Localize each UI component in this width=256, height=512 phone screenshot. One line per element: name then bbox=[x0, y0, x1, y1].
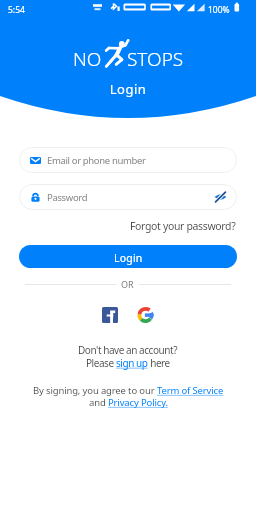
button[interactable]: Privacy Policy. bbox=[108, 396, 168, 409]
staticText: Don't have an account? bbox=[78, 343, 178, 357]
staticText: OR bbox=[121, 278, 134, 290]
button[interactable]: Sign in with Google bbox=[137, 307, 154, 323]
button[interactable]: Sign in with Facebook bbox=[102, 307, 118, 323]
other: Show password bbox=[214, 192, 227, 202]
button[interactable]: Term of Service bbox=[157, 384, 224, 397]
staticText: Privacy Policy. bbox=[108, 396, 168, 409]
staticText: Login bbox=[114, 251, 143, 265]
button[interactable]: Forgot your password? bbox=[130, 219, 236, 233]
button[interactable]: Email or phone number bbox=[19, 147, 237, 173]
staticText: sign up bbox=[116, 356, 148, 370]
staticText: and bbox=[89, 396, 108, 409]
button[interactable]: Login bbox=[19, 245, 237, 268]
staticText: Forgot your password? bbox=[130, 219, 236, 233]
staticText: By signing, you agree to our bbox=[33, 384, 157, 397]
staticText: Email or phone number bbox=[47, 154, 146, 167]
staticText: Term of Service bbox=[157, 384, 224, 397]
staticText: STOPS bbox=[127, 46, 184, 72]
staticText: Login bbox=[0, 80, 256, 98]
staticText: 100% bbox=[208, 4, 230, 16]
button[interactable]: Password bbox=[19, 184, 237, 210]
staticText: 5:54 bbox=[8, 4, 25, 16]
staticText: Password bbox=[47, 191, 88, 204]
staticText: here bbox=[148, 356, 170, 370]
button[interactable]: sign up bbox=[116, 356, 148, 370]
staticText: Please bbox=[86, 356, 116, 370]
staticText: NO bbox=[73, 46, 102, 72]
